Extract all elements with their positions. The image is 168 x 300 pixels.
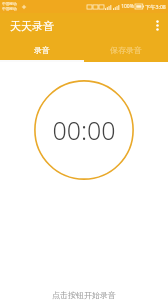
staticText: 点击按钮开始录音 [52, 290, 116, 300]
staticText: 中国移动 [2, 7, 17, 12]
button[interactable]: 录音 [0, 38, 84, 62]
staticText: 下午3:08 [145, 3, 166, 10]
staticText: 00:00 [52, 113, 116, 147]
staticText: 保存录音 [110, 45, 142, 55]
button[interactable]: 保存录音 [84, 38, 168, 62]
staticText: 中国移动 [2, 2, 17, 7]
staticText: 100% [121, 3, 134, 10]
button[interactable]: 更多选项 [146, 13, 168, 38]
staticText: 录音 [34, 45, 50, 55]
staticText: 天天录音 [10, 19, 54, 33]
